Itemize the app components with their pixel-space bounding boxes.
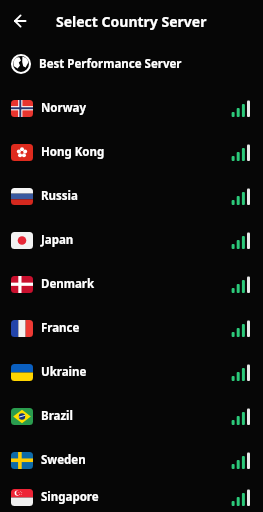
button[interactable]: France: [0, 306, 263, 350]
button[interactable]: Singapore: [0, 482, 263, 512]
staticText: Russia: [41, 188, 78, 204]
staticText: Norway: [41, 100, 86, 116]
button[interactable]: Denmark: [0, 262, 263, 306]
staticText: Singapore: [41, 489, 99, 505]
staticText: Sweden: [41, 452, 86, 468]
button[interactable]: Brazil: [0, 394, 263, 438]
staticText: Denmark: [41, 276, 95, 292]
staticText: France: [41, 320, 80, 336]
staticText: Ukraine: [41, 364, 87, 380]
button[interactable]: [4, 4, 38, 38]
button[interactable]: Best Performance Server: [0, 42, 263, 86]
staticText: Select Country Server: [56, 12, 207, 31]
button[interactable]: Hong Kong: [0, 130, 263, 174]
button[interactable]: Ukraine: [0, 350, 263, 394]
staticText: Best Performance Server: [39, 56, 182, 72]
staticText: Japan: [41, 232, 74, 248]
button[interactable]: Russia: [0, 174, 263, 218]
button[interactable]: Sweden: [0, 438, 263, 482]
button[interactable]: Japan: [0, 218, 263, 262]
staticText: Brazil: [41, 408, 73, 424]
button[interactable]: Norway: [0, 86, 263, 130]
staticText: Hong Kong: [41, 144, 105, 160]
